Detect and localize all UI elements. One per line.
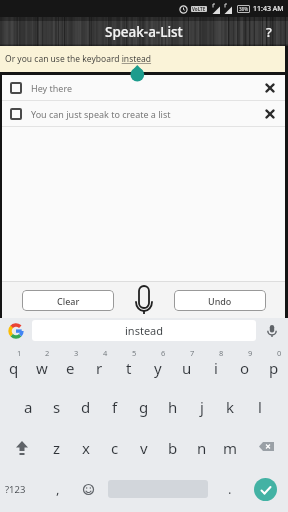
staticText: n: [197, 438, 207, 458]
button[interactable]: [0, 427, 43, 468]
button[interactable]: ,: [56, 480, 60, 498]
staticText: b: [168, 438, 178, 458]
button[interactable]: [8, 323, 24, 339]
staticText: x: [82, 438, 90, 458]
button[interactable]: [83, 484, 94, 495]
staticText: 2: [45, 348, 50, 358]
staticText: d: [81, 397, 91, 417]
staticText: r: [96, 358, 103, 378]
button[interactable]: k: [216, 386, 245, 427]
button[interactable]: m: [216, 427, 245, 468]
staticText: o: [240, 358, 250, 378]
button[interactable]: y: [143, 358, 172, 378]
button[interactable]: n: [187, 427, 216, 468]
button[interactable]: [10, 108, 22, 120]
button[interactable]: x: [71, 427, 100, 468]
button[interactable]: e: [56, 358, 85, 378]
button[interactable]: Clear: [22, 290, 114, 311]
staticText: 11:43 AM: [253, 4, 284, 14]
staticText: t: [126, 358, 132, 378]
button[interactable]: g: [129, 386, 158, 427]
button[interactable]: c: [100, 427, 129, 468]
staticText: 0: [277, 348, 282, 358]
button[interactable]: o: [230, 358, 259, 378]
button[interactable]: ?123: [5, 483, 26, 496]
button[interactable]: [265, 83, 275, 93]
staticText: f: [112, 397, 118, 417]
staticText: 3: [74, 348, 79, 358]
button[interactable]: w: [28, 358, 56, 378]
button[interactable]: Undo: [174, 290, 266, 311]
staticText: 6: [161, 348, 166, 358]
staticText: Undo: [208, 295, 232, 307]
staticText: 4: [103, 348, 108, 358]
button[interactable]: [10, 82, 22, 94]
staticText: 9: [248, 348, 253, 358]
button[interactable]: [127, 283, 161, 317]
button[interactable]: r: [85, 358, 114, 378]
button[interactable]: instead: [32, 320, 256, 341]
staticText: l: [258, 397, 262, 417]
button[interactable]: [254, 478, 277, 501]
staticText: i: [214, 358, 218, 378]
button[interactable]: [265, 109, 275, 119]
button[interactable]: [245, 427, 288, 468]
staticText: Hey there: [31, 82, 72, 94]
staticText: VoLTE: [192, 6, 206, 12]
button[interactable]: t: [114, 358, 143, 378]
staticText: 7: [190, 348, 195, 358]
button[interactable]: .: [228, 480, 232, 498]
button[interactable]: u: [172, 358, 201, 378]
staticText: ?: [266, 23, 272, 41]
button[interactable]: You can just speak to create a list: [0, 101, 288, 126]
staticText: u: [182, 358, 192, 378]
staticText: k: [226, 397, 235, 417]
staticText: e: [66, 358, 75, 378]
button[interactable]: q: [0, 358, 28, 378]
button[interactable]: f: [100, 386, 129, 427]
staticText: a: [24, 397, 33, 417]
staticText: j: [200, 397, 204, 417]
button[interactable]: b: [158, 427, 187, 468]
staticText: g: [139, 397, 149, 417]
staticText: q: [9, 358, 19, 378]
staticText: m: [223, 438, 238, 458]
staticText: w: [36, 358, 48, 378]
staticText: .: [228, 480, 232, 498]
staticText: s: [53, 397, 61, 417]
staticText: h: [168, 397, 178, 417]
button[interactable]: Or you can use the keyboard instead: [0, 46, 288, 72]
staticText: Speak-a-List: [105, 23, 183, 41]
staticText: Clear: [57, 295, 80, 307]
button[interactable]: z: [43, 427, 71, 468]
button[interactable]: d: [71, 386, 100, 427]
staticText: p: [269, 358, 279, 378]
staticText: ?123: [5, 483, 26, 496]
staticText: 38%: [239, 6, 248, 12]
button[interactable]: a: [14, 386, 42, 427]
button[interactable]: [265, 324, 279, 338]
staticText: z: [53, 438, 61, 458]
staticText: c: [111, 438, 119, 458]
staticText: v: [140, 438, 148, 458]
button[interactable]: l: [245, 386, 274, 427]
staticText: 8: [219, 348, 224, 358]
staticText: Or you can use the keyboard instead: [5, 53, 152, 65]
button[interactable]: v: [129, 427, 158, 468]
button[interactable]: i: [201, 358, 230, 378]
staticText: y: [154, 358, 162, 378]
button[interactable]: h: [158, 386, 187, 427]
staticText: instead: [125, 323, 164, 338]
button[interactable]: j: [187, 386, 216, 427]
button[interactable]: p: [259, 358, 288, 378]
staticText: ,: [56, 480, 60, 498]
button[interactable]: Hey there: [0, 75, 288, 100]
button[interactable]: ?: [266, 23, 272, 41]
staticText: 5: [132, 348, 137, 358]
button[interactable]: s: [42, 386, 71, 427]
staticText: 1: [17, 348, 22, 358]
staticText: You can just speak to create a list: [31, 108, 171, 120]
